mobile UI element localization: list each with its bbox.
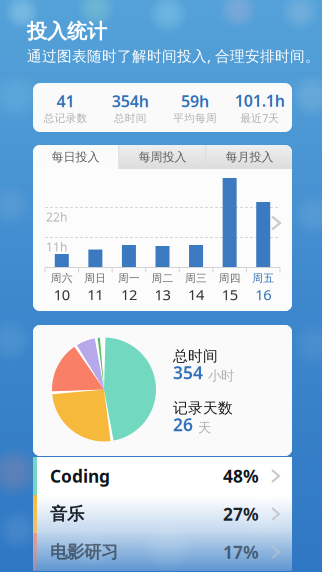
staticText: 每周投入	[138, 150, 186, 164]
staticText: 周六	[51, 272, 73, 285]
staticText: 每月投入	[225, 150, 273, 164]
staticText: 周五	[252, 272, 274, 285]
button[interactable]: Coding	[33, 457, 292, 495]
staticText: 354h	[112, 90, 149, 111]
staticText: 22h	[46, 209, 67, 225]
staticText: 15	[222, 285, 238, 304]
staticText: 平均每周	[173, 112, 217, 125]
staticText: 26	[173, 413, 193, 436]
staticText: 最近7天	[240, 111, 279, 125]
staticText: 每日投入	[51, 150, 99, 164]
staticText: 周二	[151, 272, 173, 285]
staticText: 48%	[223, 464, 259, 487]
staticText: 电影研习	[50, 541, 118, 563]
staticText: 17%	[223, 540, 259, 563]
staticText: 周日	[84, 272, 106, 285]
staticText: 14	[188, 285, 204, 304]
staticText: 11h	[46, 239, 67, 255]
staticText: 总时间	[114, 112, 147, 125]
staticText: 16	[255, 285, 271, 304]
staticText: 记录天数	[173, 399, 233, 417]
staticText: 小时	[208, 368, 234, 384]
staticText: 通过图表随时了解时间投入, 合理安排时间。	[27, 46, 320, 65]
staticText: 总记录数	[43, 112, 87, 125]
staticText: 101.1h	[235, 90, 285, 111]
button[interactable]: 每周投入	[119, 145, 205, 169]
staticText: 10	[54, 285, 70, 304]
staticText: 59h	[181, 90, 209, 111]
staticText: 周四	[219, 272, 241, 285]
staticText: 354	[173, 361, 203, 384]
staticText: Coding	[50, 464, 110, 487]
button[interactable]: 每日投入	[32, 145, 118, 169]
staticText: 投入统计	[27, 19, 107, 44]
staticText: 11	[87, 285, 103, 304]
staticText: 27%	[223, 502, 259, 525]
staticText: 总时间	[173, 347, 218, 365]
staticText: 天	[198, 420, 211, 436]
button[interactable]: 音乐	[33, 495, 292, 533]
staticText: 13	[154, 285, 170, 304]
staticText: 音乐	[50, 503, 84, 525]
staticText: 41	[56, 90, 74, 111]
button[interactable]: 电影研习	[33, 533, 292, 571]
staticText: 周三	[185, 272, 207, 285]
button[interactable]: 每月投入	[206, 145, 292, 169]
staticText: 12	[121, 285, 137, 304]
staticText: 周一	[118, 272, 140, 285]
